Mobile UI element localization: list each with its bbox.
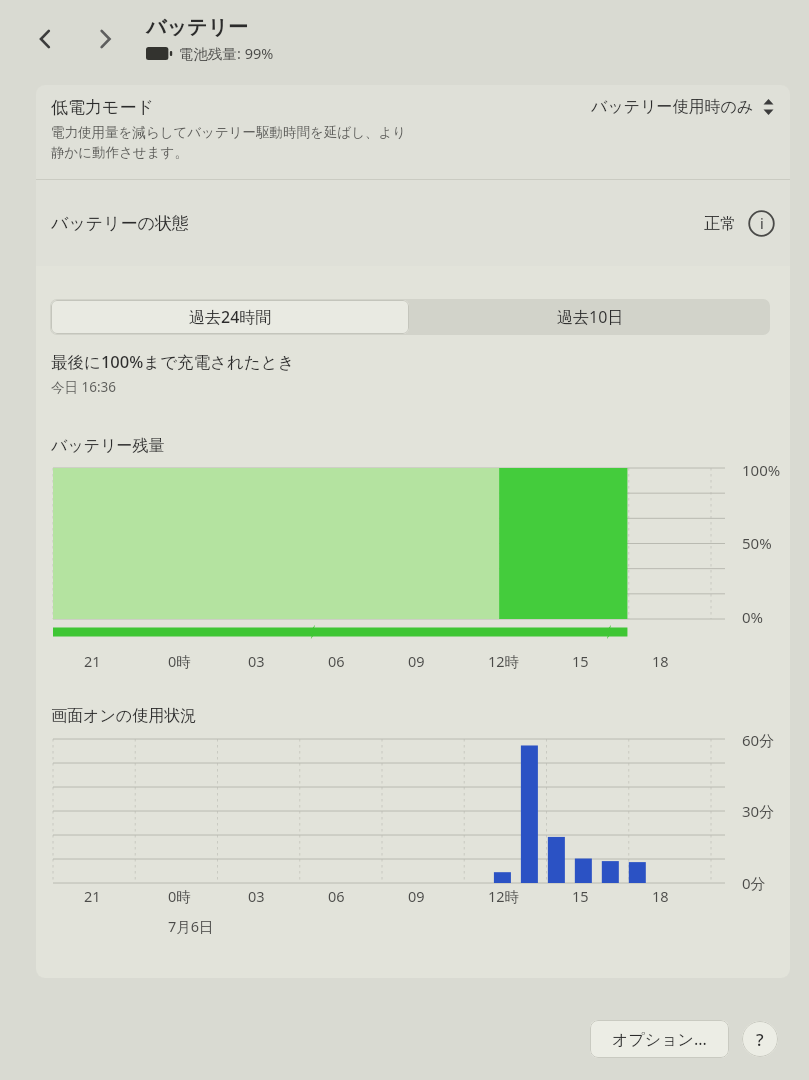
staticText: バッテリー <box>146 15 248 40</box>
button[interactable]: オプション... <box>590 1020 729 1058</box>
staticText: バッテリー使用時のみ <box>591 97 754 117</box>
staticText: 03 <box>248 886 265 906</box>
staticText: 0% <box>742 607 764 627</box>
staticText: 電池残量: 99% <box>179 43 274 63</box>
staticText: i <box>760 214 764 233</box>
staticText: 06 <box>328 651 345 671</box>
staticText: 0時 <box>168 651 191 671</box>
staticText: 今日 16:36 <box>51 378 117 396</box>
staticText: 0分 <box>742 873 766 893</box>
staticText: 15 <box>572 651 589 671</box>
staticText: 09 <box>408 886 425 906</box>
other: 情報 <box>748 210 775 237</box>
staticText: 画面オンの使用状況 <box>51 706 197 726</box>
staticText: 12時 <box>488 651 520 671</box>
button[interactable]: 正常 <box>704 210 775 237</box>
button[interactable]: 過去10日 <box>410 299 770 335</box>
staticText: オプション... <box>612 1028 707 1050</box>
staticText: ? <box>756 1028 764 1051</box>
button[interactable]: バッテリー使用時のみ <box>591 97 775 117</box>
staticText: 最後に100%まで充電されたとき <box>51 350 295 373</box>
button[interactable]: ヘルプ <box>742 1021 778 1057</box>
staticText: 低電力モード <box>51 97 154 118</box>
staticText: 18 <box>652 886 669 906</box>
staticText: 21 <box>84 886 101 906</box>
staticText: 30分 <box>742 801 775 821</box>
staticText: 7月6日 <box>168 916 214 936</box>
staticText: 15 <box>572 886 589 906</box>
staticText: 06 <box>328 886 345 906</box>
staticText: 50% <box>742 533 772 553</box>
staticText: 過去24時間 <box>189 306 272 328</box>
staticText: 18 <box>652 651 669 671</box>
button[interactable]: 戻る <box>24 18 66 60</box>
staticText: 21 <box>84 651 101 671</box>
button[interactable]: 過去24時間 <box>51 300 409 334</box>
staticText: 09 <box>408 651 425 671</box>
staticText: バッテリーの状態 <box>51 213 704 234</box>
staticText: 静かに動作させます。 <box>51 144 188 161</box>
button[interactable]: 進む <box>84 18 126 60</box>
staticText: 100% <box>742 460 781 480</box>
staticText: 60分 <box>742 730 775 750</box>
staticText: 12時 <box>488 886 520 906</box>
staticText: 03 <box>248 651 265 671</box>
staticText: 0時 <box>168 886 191 906</box>
staticText: 電力使用量を減らしてバッテリー駆動時間を延ばし、より <box>51 124 407 141</box>
staticText: 過去10日 <box>557 306 624 328</box>
staticText: バッテリー残量 <box>51 436 165 456</box>
staticText: 正常 <box>704 214 736 234</box>
